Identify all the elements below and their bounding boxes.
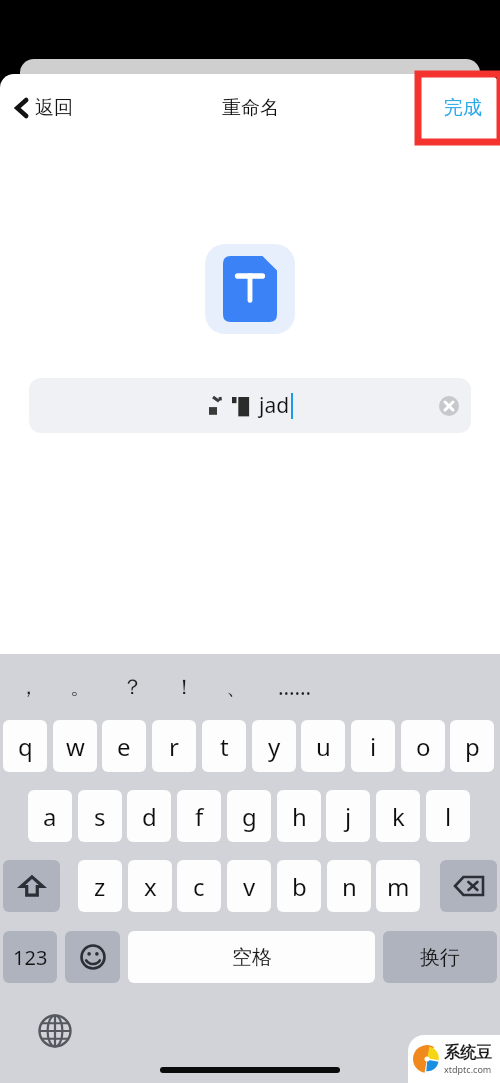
- staticText: ……: [278, 673, 312, 702]
- button[interactable]: Emoji: [65, 931, 120, 983]
- button[interactable]: s: [78, 790, 122, 842]
- staticText: f: [195, 800, 204, 833]
- staticText: w: [66, 730, 85, 763]
- button[interactable]: q: [3, 720, 47, 772]
- staticText: 123: [13, 944, 48, 971]
- button[interactable]: k: [376, 790, 420, 842]
- button[interactable]: m: [376, 860, 420, 912]
- staticText: n: [342, 870, 357, 903]
- button[interactable]: c: [177, 860, 221, 912]
- staticText: s: [94, 800, 106, 833]
- button[interactable]: b: [277, 860, 321, 912]
- staticText: t: [220, 730, 229, 763]
- button[interactable]: ，: [18, 654, 70, 720]
- staticText: m: [387, 870, 410, 903]
- button[interactable]: 空格: [128, 931, 375, 983]
- staticText: 、: [226, 674, 247, 700]
- button[interactable]: Shift: [3, 860, 60, 912]
- staticText: ！: [174, 674, 195, 700]
- button[interactable]: n: [327, 860, 371, 912]
- staticText: xtdptc.com: [444, 1063, 492, 1075]
- button[interactable]: 、: [226, 654, 278, 720]
- button[interactable]: ？: [122, 654, 174, 720]
- staticText: e: [117, 730, 131, 763]
- staticText: 系统豆: [444, 1043, 492, 1063]
- button[interactable]: jad: [29, 378, 471, 433]
- button[interactable]: Clear text: [439, 396, 459, 416]
- staticText: i: [370, 730, 377, 763]
- staticText: 重命名: [222, 96, 279, 120]
- button[interactable]: ！: [174, 654, 226, 720]
- staticText: q: [18, 730, 33, 763]
- staticText: 返回: [35, 96, 73, 120]
- staticText: o: [416, 730, 431, 763]
- button[interactable]: f: [177, 790, 221, 842]
- staticText: h: [292, 800, 307, 833]
- button[interactable]: t: [202, 720, 246, 772]
- button[interactable]: o: [401, 720, 445, 772]
- button[interactable]: 。: [70, 654, 122, 720]
- button[interactable]: 返回: [10, 90, 79, 126]
- staticText: y: [268, 730, 281, 763]
- button[interactable]: Backspace: [440, 860, 497, 912]
- button[interactable]: u: [301, 720, 345, 772]
- staticText: z: [94, 870, 106, 903]
- button[interactable]: a: [28, 790, 72, 842]
- staticText: j: [345, 800, 352, 833]
- staticText: ？: [122, 674, 143, 700]
- staticText: jad: [259, 391, 290, 420]
- staticText: r: [169, 730, 179, 763]
- staticText: l: [445, 800, 452, 833]
- staticText: p: [465, 730, 480, 763]
- button[interactable]: ……: [278, 654, 348, 720]
- button[interactable]: z: [78, 860, 122, 912]
- button[interactable]: 123: [3, 931, 57, 983]
- button[interactable]: d: [127, 790, 171, 842]
- button[interactable]: 换行: [383, 931, 497, 983]
- button[interactable]: Change keyboard: [33, 1009, 77, 1053]
- staticText: b: [292, 870, 307, 903]
- button[interactable]: h: [277, 790, 321, 842]
- button[interactable]: j: [326, 790, 370, 842]
- button[interactable]: g: [227, 790, 271, 842]
- button[interactable]: i: [351, 720, 395, 772]
- staticText: d: [142, 800, 157, 833]
- staticText: x: [144, 870, 157, 903]
- button[interactable]: e: [102, 720, 146, 772]
- button[interactable]: p: [450, 720, 494, 772]
- button[interactable]: 完成: [426, 86, 500, 130]
- button[interactable]: x: [128, 860, 172, 912]
- staticText: ，: [18, 674, 39, 700]
- staticText: g: [242, 800, 257, 833]
- staticText: v: [243, 870, 256, 903]
- staticText: k: [392, 800, 405, 833]
- staticText: c: [193, 870, 205, 903]
- staticText: 换行: [420, 945, 460, 970]
- staticText: u: [316, 730, 331, 763]
- button[interactable]: w: [53, 720, 97, 772]
- staticText: 。: [70, 674, 91, 700]
- button[interactable]: y: [252, 720, 296, 772]
- staticText: 空格: [232, 945, 272, 970]
- button[interactable]: v: [227, 860, 271, 912]
- button[interactable]: r: [152, 720, 196, 772]
- button[interactable]: l: [426, 790, 470, 842]
- staticText: 完成: [444, 96, 482, 120]
- staticText: a: [43, 800, 57, 833]
